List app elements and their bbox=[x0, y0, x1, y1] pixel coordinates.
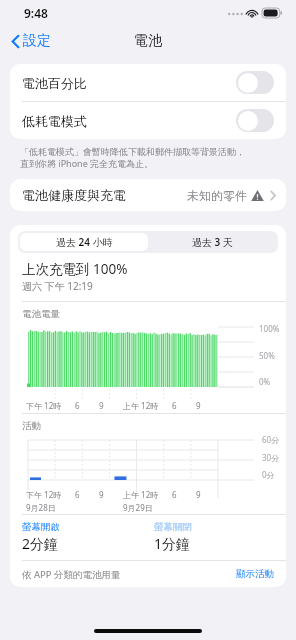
staticText: 6 bbox=[75, 489, 80, 500]
staticText: 低耗電模式 bbox=[22, 113, 87, 129]
button[interactable]: 設定 bbox=[8, 30, 54, 52]
staticText: 60分 bbox=[262, 434, 280, 445]
staticText: 電池 bbox=[134, 32, 162, 50]
button[interactable]: Toggle bbox=[236, 71, 274, 94]
staticText: 50% bbox=[259, 350, 275, 361]
button[interactable]: 過去 3 天 bbox=[148, 233, 276, 251]
staticText: 上次充電到 100% bbox=[22, 260, 128, 278]
staticText: 「低耗電模式」會暫時降低下載和郵件擷取等背景活動， bbox=[20, 146, 245, 157]
staticText: 過去 24 小時 bbox=[56, 235, 113, 249]
staticText: 2分鐘 bbox=[22, 534, 59, 553]
staticText: 9 bbox=[99, 400, 104, 411]
staticText: 顯示活動 bbox=[236, 568, 274, 580]
staticText: 9 bbox=[196, 489, 201, 500]
button[interactable]: 低耗電模式 bbox=[10, 102, 286, 139]
staticText: 活動 bbox=[22, 420, 41, 432]
staticText: 未知的零件 bbox=[187, 188, 247, 203]
button[interactable]: 電池健康度與充電 bbox=[10, 179, 286, 211]
staticText: 30分 bbox=[262, 452, 280, 463]
staticText: 上午 12時 bbox=[123, 489, 159, 500]
staticText: 0% bbox=[259, 376, 271, 387]
staticText: 直到你將 iPhone 完全充電為止。 bbox=[20, 157, 154, 169]
button[interactable]: 電池百分比 bbox=[10, 64, 286, 101]
staticText: 電池電量 bbox=[22, 308, 60, 320]
button[interactable]: 過去 24 小時 bbox=[20, 233, 148, 251]
staticText: 電池百分比 bbox=[22, 75, 87, 91]
staticText: 9月29日 bbox=[123, 502, 153, 513]
staticText: 9 bbox=[196, 400, 201, 411]
button[interactable]: Toggle bbox=[236, 109, 274, 132]
staticText: 0分 bbox=[262, 469, 275, 480]
staticText: 9 bbox=[99, 489, 104, 500]
staticText: 週六 下午 12:19 bbox=[22, 279, 93, 293]
staticText: 螢幕開啟 bbox=[22, 521, 60, 533]
button[interactable]: 依 APP 分類的電池用量 bbox=[10, 561, 286, 587]
staticText: 6 bbox=[172, 489, 177, 500]
staticText: 6 bbox=[172, 400, 177, 411]
staticText: 6 bbox=[75, 400, 80, 411]
staticText: 上午 12時 bbox=[123, 400, 159, 411]
staticText: 9:48 bbox=[24, 5, 48, 21]
staticText: 1分鐘 bbox=[154, 534, 191, 553]
staticText: 螢幕關閉 bbox=[154, 521, 192, 533]
staticText: 下午 12時 bbox=[26, 400, 62, 411]
staticText: 設定 bbox=[23, 32, 51, 50]
staticText: 100% bbox=[259, 323, 280, 334]
staticText: 依 APP 分類的電池用量 bbox=[22, 568, 121, 581]
staticText: 過去 3 天 bbox=[192, 235, 233, 249]
staticText: 9月28日 bbox=[26, 502, 56, 513]
staticText: 下午 12時 bbox=[26, 489, 62, 500]
staticText: 電池健康度與充電 bbox=[22, 187, 126, 203]
